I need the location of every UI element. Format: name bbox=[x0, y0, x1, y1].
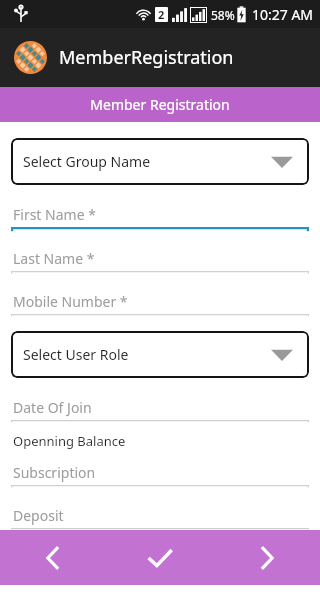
button[interactable]: First Name * bbox=[11, 201, 309, 232]
staticText: Subscription bbox=[13, 463, 96, 482]
button[interactable]: Deposit bbox=[11, 502, 309, 530]
button[interactable]: Date Of Join bbox=[11, 394, 309, 424]
staticText: Openning Balance bbox=[13, 432, 126, 450]
staticText: Last Name * bbox=[13, 249, 95, 268]
staticText: Date Of Join bbox=[13, 398, 92, 417]
button[interactable]: Next bbox=[213, 530, 320, 585]
button[interactable]: Select Group Name bbox=[11, 138, 309, 185]
button[interactable]: Mobile Number * bbox=[11, 288, 309, 318]
staticText: 10:27 AM bbox=[252, 5, 314, 24]
button[interactable]: Submit bbox=[106, 530, 213, 585]
staticText: 2 bbox=[158, 7, 165, 22]
button[interactable]: Last Name * bbox=[11, 245, 309, 275]
staticText: MemberRegistration bbox=[59, 45, 234, 70]
button[interactable]: Subscription bbox=[11, 459, 309, 489]
staticText: Select User Role bbox=[23, 345, 129, 364]
button[interactable]: Previous bbox=[0, 530, 106, 585]
staticText: Deposit bbox=[13, 506, 64, 525]
staticText: Select Group Name bbox=[23, 152, 151, 171]
button[interactable]: Select User Role bbox=[11, 331, 309, 378]
staticText: Member Registration bbox=[90, 95, 230, 114]
staticText: 58% bbox=[211, 7, 235, 23]
staticText: First Name * bbox=[13, 205, 96, 224]
staticText: Mobile Number * bbox=[13, 292, 128, 311]
